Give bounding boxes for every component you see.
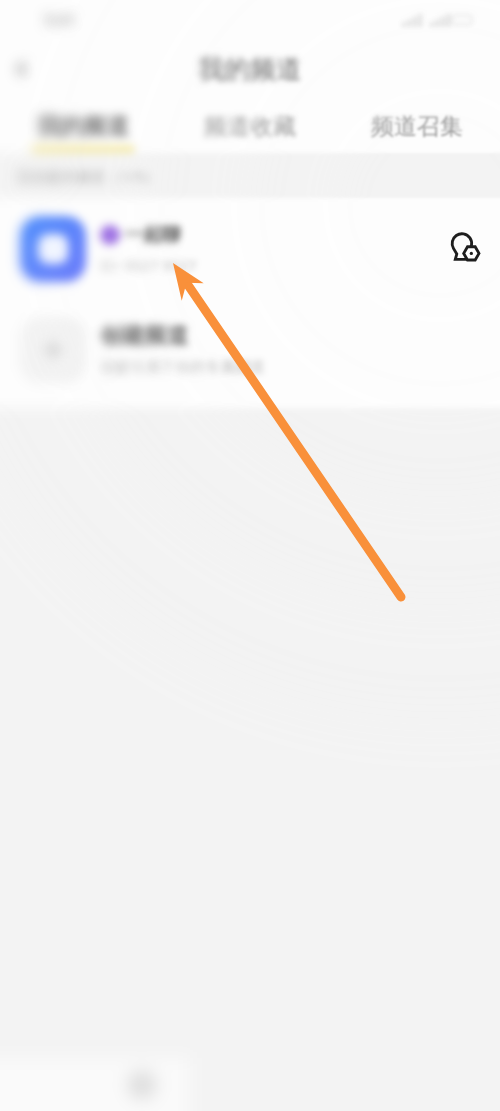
staticText: 我的频道: [198, 53, 302, 86]
staticText: ID: 9527 9527: [100, 255, 197, 275]
button[interactable]: 频道收藏: [166, 98, 333, 153]
staticText: 创建专属于你的专属频道: [100, 358, 265, 377]
staticText: 我的频道: [37, 112, 129, 141]
staticText: 频道收藏: [204, 112, 296, 141]
staticText: 一起聊: [124, 223, 181, 247]
staticText: 我的频道: [198, 53, 302, 86]
staticText: 创建专属于你的专属频道: [100, 358, 265, 377]
staticText: 我创建的频道（1/5）: [16, 166, 159, 186]
staticText: ID: 9527 9527: [100, 255, 197, 275]
staticText: ID: 9527 9527: [100, 255, 197, 275]
staticText: 创建专属于你的专属频道: [100, 358, 265, 377]
staticText: 我创建的频道（1/5）: [16, 166, 159, 186]
button[interactable]: 一起聊: [0, 198, 500, 299]
staticText: 频道召集: [371, 112, 463, 141]
staticText: 创建频道: [100, 322, 188, 350]
staticText: 我创建的频道（1/5）: [16, 166, 159, 186]
button[interactable]: 一起聊: [0, 198, 500, 299]
staticText: 创建频道: [100, 322, 188, 350]
staticText: 我的频道: [37, 112, 129, 141]
button[interactable]: 创建频道: [0, 299, 500, 400]
button[interactable]: Back: [0, 47, 44, 91]
staticText: 我创建的频道（1/5）: [16, 166, 159, 186]
staticText: 频道召集: [371, 112, 463, 141]
staticText: ID: 9527 9527: [100, 255, 197, 275]
button[interactable]: 创建频道: [0, 299, 500, 400]
staticText: ID: 9527 9527: [100, 255, 197, 275]
staticText: 我的频道: [37, 112, 129, 141]
staticText: 9:41: [44, 9, 76, 31]
staticText: 9:41: [44, 9, 76, 31]
button[interactable]: 我的频道: [0, 98, 166, 153]
staticText: 频道收藏: [204, 112, 296, 141]
staticText: 9:41: [44, 9, 76, 31]
staticText: 我的频道: [198, 53, 302, 86]
staticText: 频道召集: [371, 112, 463, 141]
staticText: 创建频道: [100, 322, 188, 350]
button[interactable]: 频道收藏: [166, 98, 333, 153]
staticText: 频道召集: [371, 112, 463, 141]
button[interactable]: 创建频道: [0, 299, 500, 400]
staticText: 创建频道: [100, 322, 188, 350]
button[interactable]: Back: [0, 47, 44, 91]
button[interactable]: 我的频道: [0, 98, 166, 153]
button[interactable]: 频道收藏: [166, 98, 333, 153]
staticText: 频道收藏: [204, 112, 296, 141]
button[interactable]: 频道召集: [333, 98, 500, 153]
button[interactable]: 频道收藏: [166, 98, 333, 153]
staticText: 频道收藏: [204, 112, 296, 141]
staticText: 创建专属于你的专属频道: [100, 358, 265, 377]
button[interactable]: 频道召集: [333, 98, 500, 153]
button[interactable]: 频道收藏: [166, 98, 333, 153]
button[interactable]: 一起聊: [0, 198, 500, 299]
staticText: 9:41: [44, 9, 76, 31]
staticText: 我的频道: [37, 112, 129, 141]
staticText: 我的频道: [37, 112, 129, 141]
staticText: 我创建的频道（1/5）: [16, 166, 159, 186]
staticText: 我的频道: [37, 112, 129, 141]
staticText: 一起聊: [124, 223, 181, 247]
staticText: 创建专属于你的专属频道: [100, 358, 265, 377]
staticText: 我创建的频道（1/5）: [16, 166, 159, 186]
button[interactable]: 一起聊: [0, 198, 500, 299]
staticText: 创建频道: [100, 322, 188, 350]
button[interactable]: Back: [0, 47, 44, 91]
button[interactable]: 我的频道: [0, 98, 166, 153]
staticText: 频道召集: [371, 112, 463, 141]
button[interactable]: 创建频道: [0, 299, 500, 400]
staticText: 9:41: [44, 9, 76, 31]
button[interactable]: 我的频道: [0, 98, 166, 153]
staticText: ID: 9527 9527: [100, 255, 197, 275]
staticText: 频道收藏: [204, 112, 296, 141]
staticText: 一起聊: [124, 223, 181, 247]
button[interactable]: 一起聊: [0, 198, 500, 299]
staticText: 我的频道: [198, 53, 302, 86]
button[interactable]: 频道召集: [333, 98, 500, 153]
button[interactable]: 频道召集: [333, 98, 500, 153]
button[interactable]: 频道收藏: [166, 98, 333, 153]
staticText: 我的频道: [198, 53, 302, 86]
staticText: 频道召集: [371, 112, 463, 141]
button[interactable]: Back: [0, 47, 44, 91]
staticText: 我的频道: [198, 53, 302, 86]
staticText: 一起聊: [124, 223, 181, 247]
button[interactable]: 创建频道: [0, 299, 500, 400]
staticText: 一起聊: [124, 223, 181, 247]
button[interactable]: 我的频道: [0, 98, 166, 153]
button[interactable]: Channel assistant: [447, 231, 481, 265]
button[interactable]: 频道召集: [333, 98, 500, 153]
staticText: 9:41: [44, 9, 76, 31]
staticText: 频道收藏: [204, 112, 296, 141]
button[interactable]: 我的频道: [0, 98, 166, 153]
button[interactable]: 创建频道: [0, 299, 500, 400]
button[interactable]: 一起聊: [0, 198, 500, 299]
staticText: 一起聊: [124, 223, 181, 247]
button[interactable]: 频道召集: [333, 98, 500, 153]
staticText: 创建频道: [100, 322, 188, 350]
button[interactable]: Back: [0, 47, 44, 91]
button[interactable]: Back: [0, 47, 44, 91]
staticText: 创建专属于你的专属频道: [100, 358, 265, 377]
